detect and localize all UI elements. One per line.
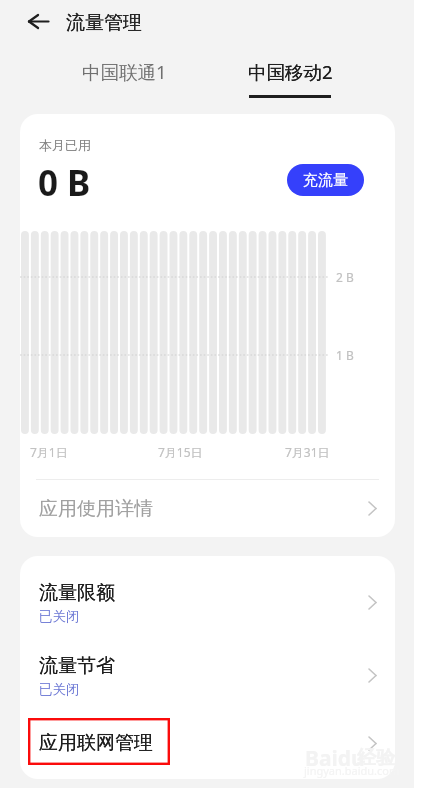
staticText: 流量节省 — [39, 654, 115, 678]
staticText: 2 B — [336, 269, 354, 285]
button[interactable]: 充流量 — [287, 164, 364, 196]
staticText: 本月已用 — [39, 137, 91, 153]
staticText: 1 B — [336, 347, 354, 363]
staticText: 已关闭 — [39, 681, 80, 698]
staticText: 中国联通1 — [82, 59, 167, 84]
staticText: Baidu — [305, 744, 365, 773]
staticText: 流量管理 — [66, 11, 142, 35]
button[interactable]: 应用联网管理 — [20, 707, 395, 779]
staticText: 充流量 — [303, 171, 348, 190]
staticText: 7月15日 — [158, 444, 203, 460]
staticText: 流量限额 — [39, 581, 115, 605]
button[interactable]: 流量节省 — [20, 639, 395, 712]
staticText: 流量限额 — [39, 581, 115, 605]
button[interactable]: Back — [22, 5, 54, 37]
staticText: 中国移动2 — [248, 59, 333, 84]
button[interactable]: 流量限额 — [20, 566, 395, 639]
staticText: 7月1日 — [30, 444, 68, 460]
staticText: 中国移动2 — [248, 59, 333, 84]
staticText: 流量节省 — [39, 654, 115, 678]
staticText: 应用使用详情 — [39, 497, 153, 521]
staticText: 已关闭 — [39, 608, 80, 625]
staticText: 中国移动2 — [248, 59, 333, 84]
staticText: 流量节省 — [39, 654, 115, 678]
staticText: 0 B — [38, 159, 91, 207]
staticText: 流量管理 — [66, 11, 142, 35]
staticText: 经验 — [357, 746, 395, 770]
staticText: 应用联网管理 — [39, 731, 153, 755]
button[interactable]: 中国联通1 — [62, 53, 186, 89]
staticText: jingyan.baidu.com — [304, 763, 400, 778]
button[interactable]: 中国移动2 — [228, 53, 352, 99]
staticText: 7月31日 — [285, 444, 330, 460]
staticText: 流量管理 — [66, 11, 142, 35]
staticText: 流量限额 — [39, 581, 115, 605]
button[interactable]: 应用使用详情 — [20, 480, 395, 537]
staticText: 应用联网管理 — [39, 731, 153, 755]
staticText: 应用联网管理 — [39, 731, 153, 755]
